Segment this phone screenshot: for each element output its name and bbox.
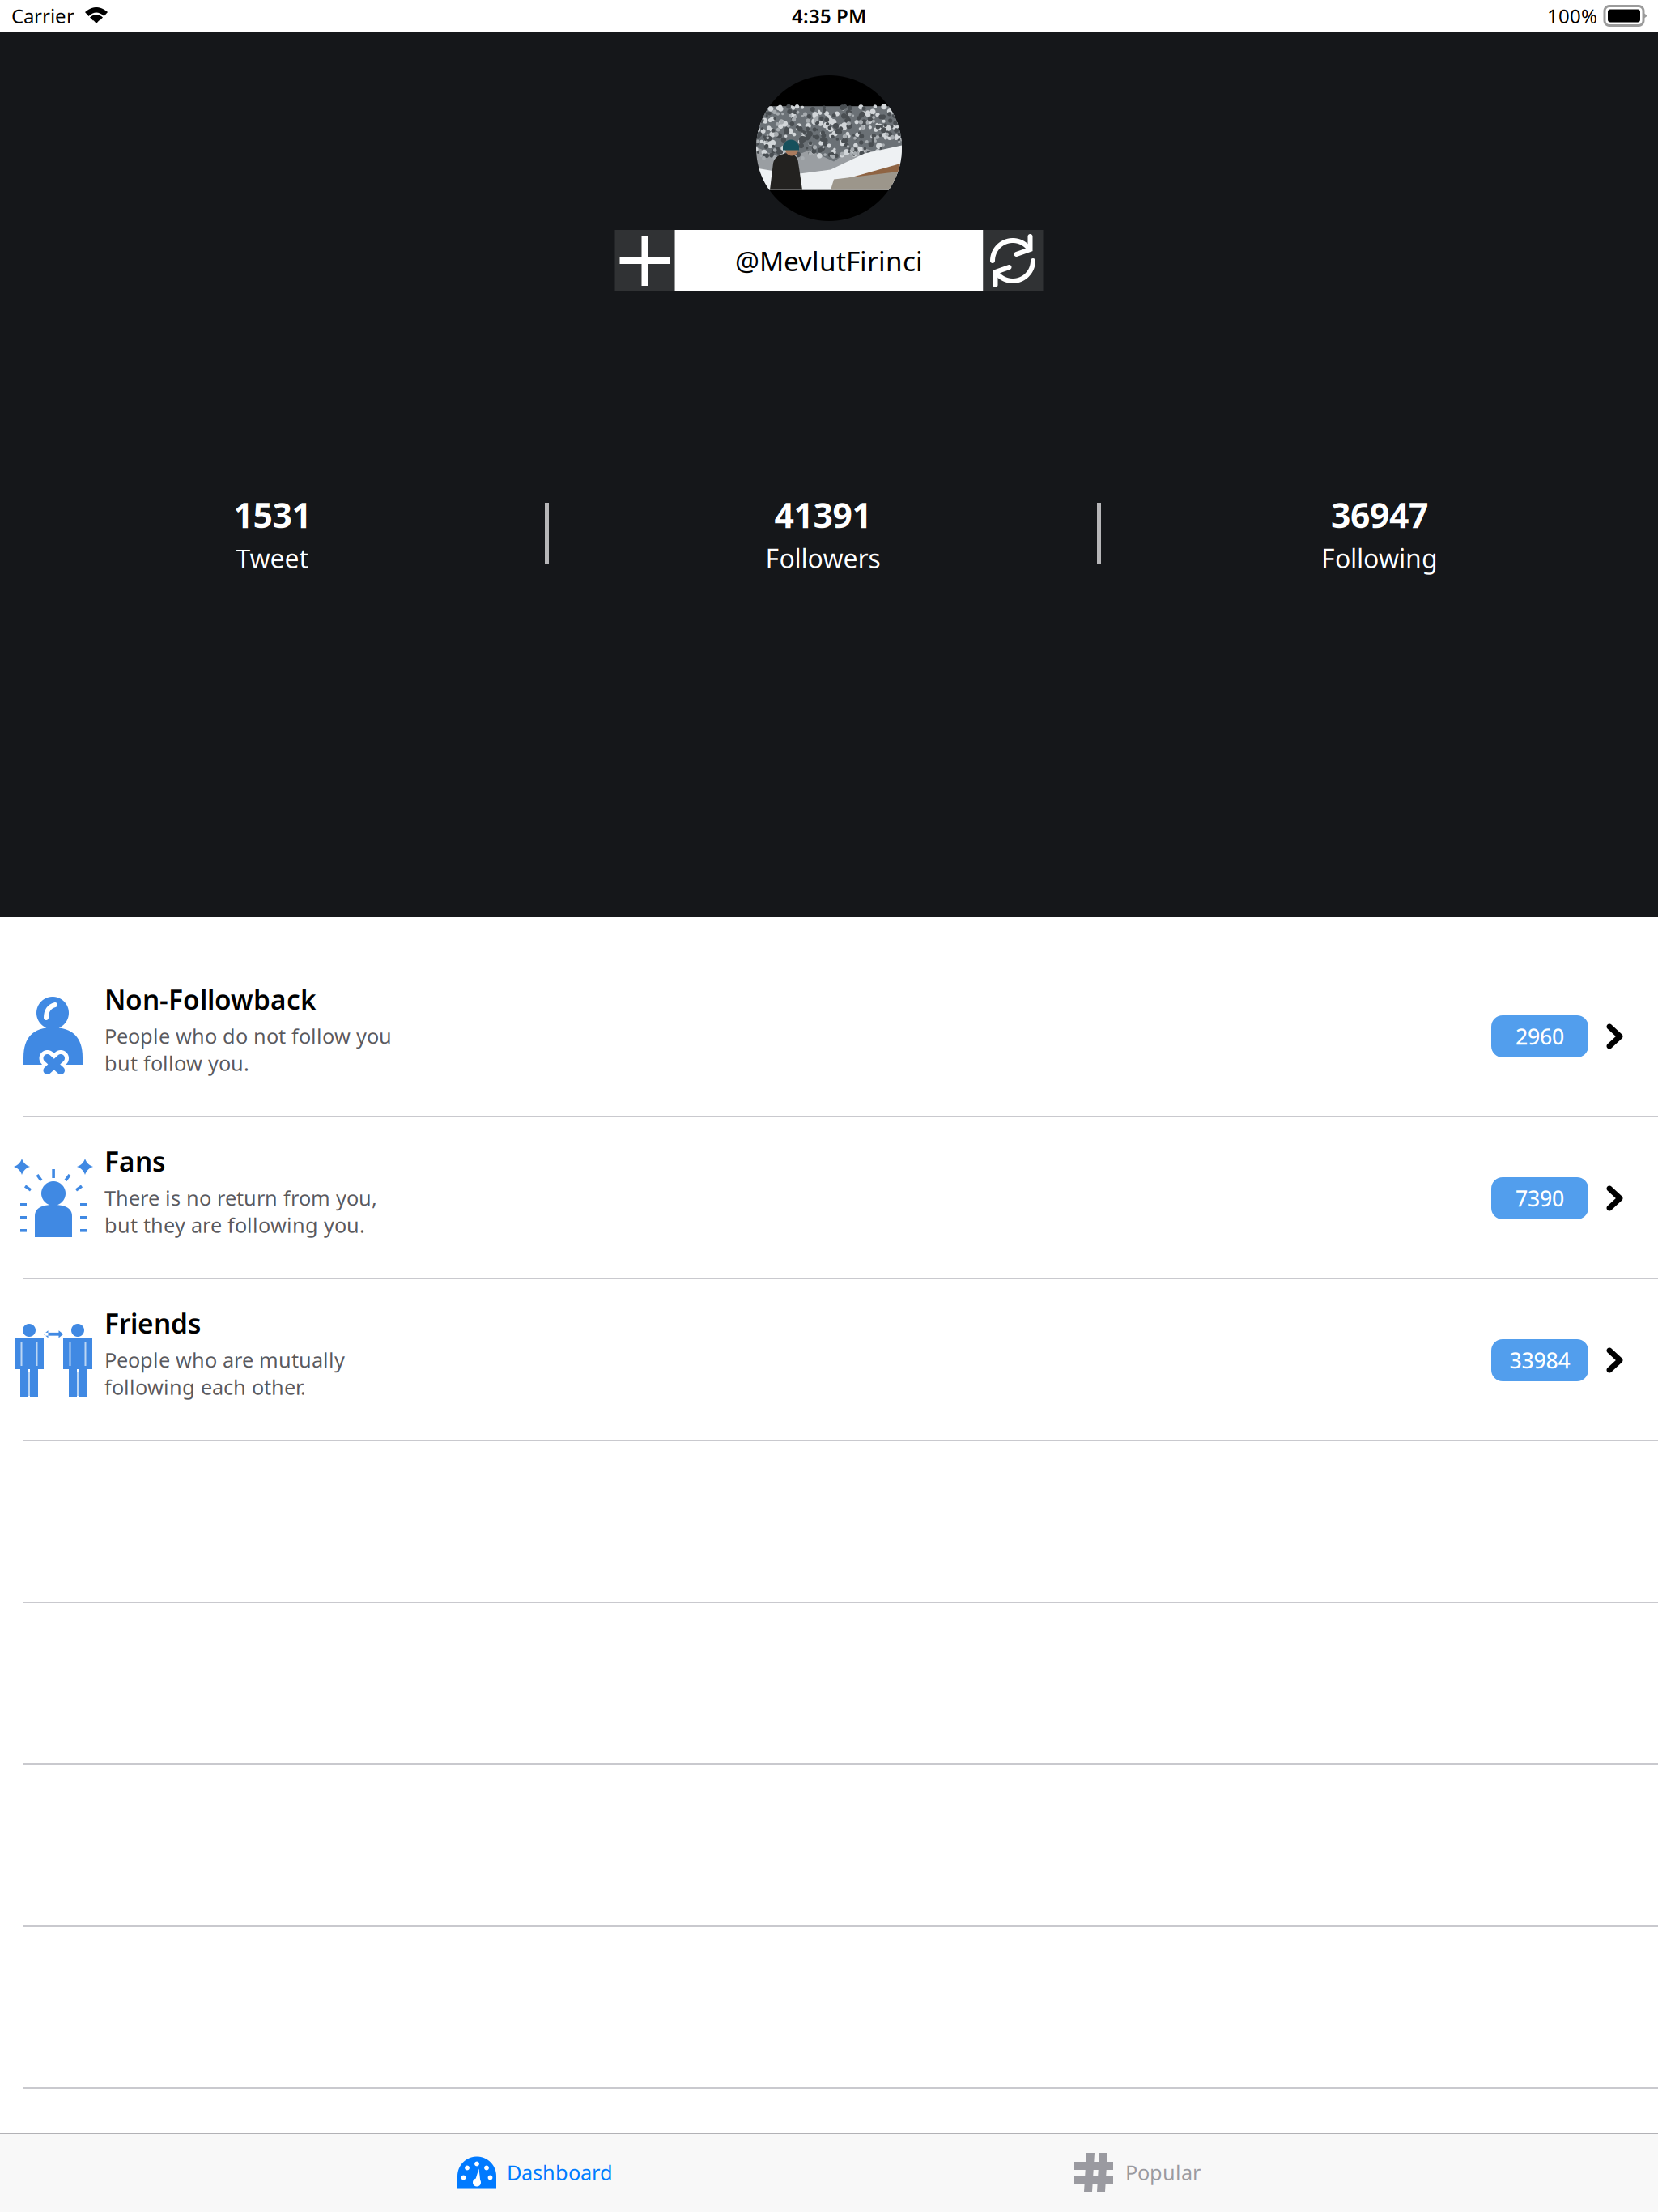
staticText: Carrier bbox=[11, 3, 74, 29]
staticText: 100% bbox=[1547, 3, 1597, 29]
staticText: Friends bbox=[104, 1305, 201, 1341]
staticText: following each other. bbox=[104, 1373, 306, 1400]
button[interactable]: Friends bbox=[0, 1279, 1658, 1441]
staticText: @MevlutFirinci bbox=[735, 243, 923, 279]
staticText: Dashboard bbox=[507, 2159, 613, 2186]
staticText: People who are mutually bbox=[104, 1346, 345, 1373]
button[interactable]: Non-Followback bbox=[0, 955, 1658, 1117]
staticText: Followers bbox=[765, 541, 880, 575]
staticText: 2960 bbox=[1516, 1022, 1564, 1051]
button[interactable]: Add account bbox=[615, 230, 675, 291]
staticText: but follow you. bbox=[104, 1049, 249, 1077]
button[interactable]: Popular bbox=[1074, 2133, 1201, 2212]
staticText: Non-Followback bbox=[104, 981, 317, 1017]
staticText: 1531 bbox=[234, 492, 311, 538]
button[interactable]: Dashboard bbox=[457, 2133, 613, 2212]
staticText: There is no return from you, bbox=[104, 1184, 377, 1211]
staticText: but they are following you. bbox=[104, 1211, 365, 1239]
staticText: Following bbox=[1321, 541, 1438, 575]
staticText: Tweet bbox=[236, 541, 309, 575]
staticText: 41391 bbox=[774, 492, 872, 538]
staticText: Fans bbox=[104, 1143, 165, 1179]
staticText: 7390 bbox=[1516, 1184, 1564, 1213]
staticText: 33984 bbox=[1509, 1346, 1570, 1375]
button[interactable]: Fans bbox=[0, 1117, 1658, 1279]
staticText: Popular bbox=[1125, 2159, 1201, 2186]
staticText: 36947 bbox=[1331, 492, 1428, 538]
staticText: 4:35 PM bbox=[792, 3, 866, 29]
button[interactable]: Refresh bbox=[983, 230, 1043, 291]
staticText: People who do not follow you bbox=[104, 1022, 392, 1049]
